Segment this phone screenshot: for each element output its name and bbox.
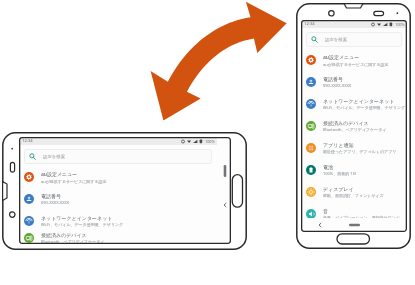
staticText: 設定を検索 — [325, 37, 348, 43]
staticText: au設定メニュー — [323, 54, 360, 61]
staticText: auが提供するサービスに関する設定 — [323, 62, 389, 67]
staticText: 接続済みのデバイス — [41, 232, 87, 238]
staticText: Wi-Fi、モバイル、データ使用量、テザリング — [323, 105, 406, 110]
button[interactable]: 電話番号 — [301, 71, 407, 93]
other: Back — [222, 202, 228, 208]
staticText: ネットワークとインターネット — [323, 98, 395, 104]
other: Home — [223, 165, 227, 177]
button[interactable]: 設定を検索 — [24, 149, 212, 164]
staticText: 音 — [323, 208, 328, 214]
staticText: 100%、残量約 1日 — [323, 171, 357, 176]
staticText: ネットワークとインターネット — [41, 215, 113, 221]
staticText: 接続済みのデバイス — [323, 120, 369, 126]
button[interactable]: ディスプレイ — [301, 181, 407, 203]
staticText: 壁紙、画面消灯、フォントサイズ — [323, 193, 384, 198]
button[interactable]: ネットワークとインターネット — [19, 210, 217, 232]
button[interactable]: au設定メニュー — [301, 49, 407, 71]
staticText: 12:34 — [304, 21, 315, 27]
staticText: Wi-Fi、モバイル、データ使用量、テザリング — [41, 222, 124, 227]
staticText: 100% — [205, 139, 215, 144]
staticText: ディスプレイ — [323, 186, 354, 192]
staticText: 100% — [395, 22, 405, 27]
button[interactable]: 音 — [301, 203, 407, 225]
staticText: auが提供するサービスに関する設定 — [41, 179, 107, 184]
button[interactable]: 電話番号 — [19, 188, 217, 210]
staticText: アプリと通知 — [323, 142, 354, 148]
staticText: Bluetooth、ペアリデイフケータイ — [323, 127, 387, 132]
staticText: 音量、バイブレーション、通知音サウンド — [323, 215, 401, 220]
staticText: 090-XXXX-XXXX — [323, 83, 352, 88]
button[interactable]: ネットワークとインターネット — [301, 93, 407, 115]
staticText: 最近使ったアプリ、デフォルトのアプリ — [323, 149, 397, 154]
staticText: 電話番号 — [41, 193, 61, 199]
button[interactable]: au設定メニュー — [19, 166, 217, 188]
staticText: 090-XXXX-XXXX — [41, 200, 70, 205]
staticText: 設定を検索 — [43, 154, 66, 160]
other: Home — [349, 223, 360, 227]
staticText: 電話番号 — [323, 76, 343, 82]
button[interactable]: 接続済みのデバイス — [301, 115, 407, 137]
button[interactable]: 電池 — [301, 159, 407, 181]
button[interactable]: アプリと通知 — [301, 137, 407, 159]
staticText: 電池 — [323, 164, 333, 170]
button[interactable]: 接続済みのデバイス — [19, 232, 217, 244]
staticText: 12:34 — [22, 138, 33, 144]
button[interactable]: 設定を検索 — [306, 32, 402, 47]
other: Back — [317, 222, 323, 228]
staticText: Bluetooth、ペアリデイフケータイ — [41, 239, 105, 244]
staticText: au設定メニュー — [41, 171, 78, 178]
